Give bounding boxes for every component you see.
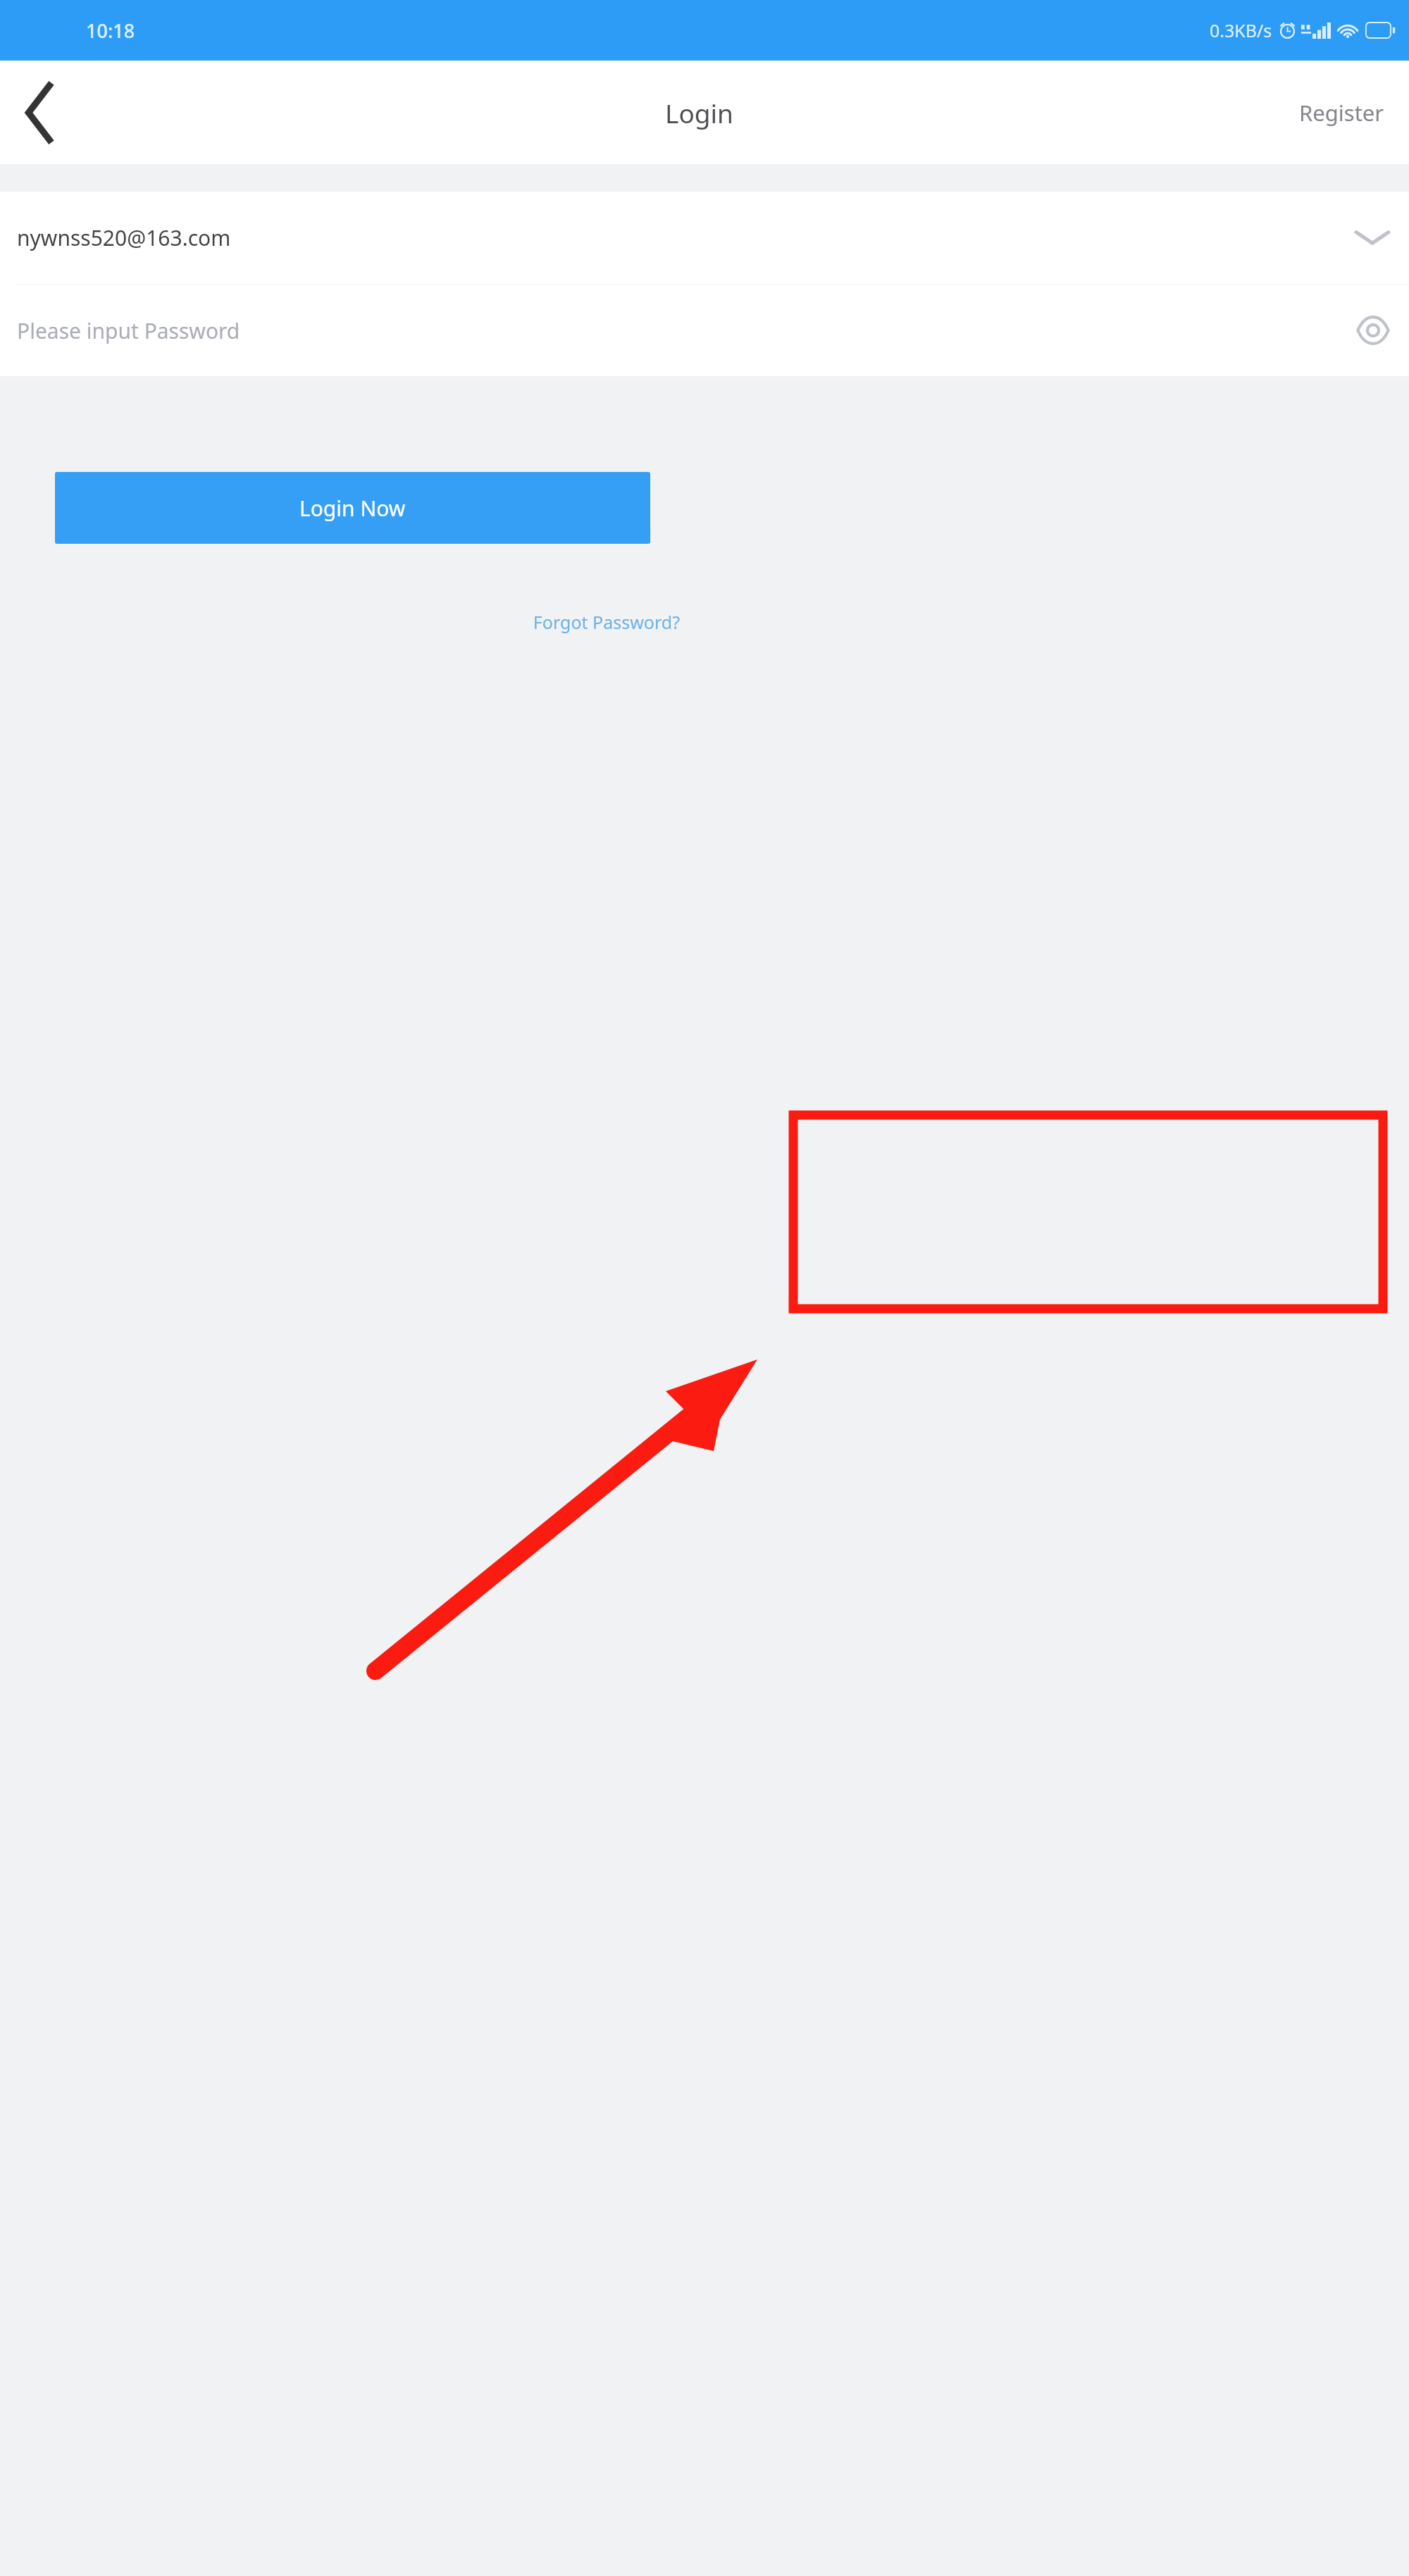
button[interactable]: nywnss520@163.com — [0, 192, 1409, 284]
staticText: nywnss520@163.com — [17, 223, 1354, 252]
button[interactable]: Register — [1274, 61, 1409, 164]
staticText: Please input Password — [17, 316, 1355, 345]
staticText: Register — [1299, 98, 1384, 127]
button[interactable]: Back — [0, 61, 77, 164]
staticText: 10:18 — [86, 18, 135, 44]
button[interactable]: Show password — [1355, 313, 1391, 348]
button[interactable]: Login Now — [55, 472, 650, 544]
button[interactable]: Please input Password — [0, 285, 1409, 376]
button[interactable]: Forgot Password? — [493, 595, 680, 648]
staticText: Login — [665, 95, 733, 130]
staticText: 0.3KB/s — [1210, 18, 1272, 42]
staticText: Login Now — [299, 494, 406, 523]
staticText: Forgot Password? — [533, 610, 680, 634]
